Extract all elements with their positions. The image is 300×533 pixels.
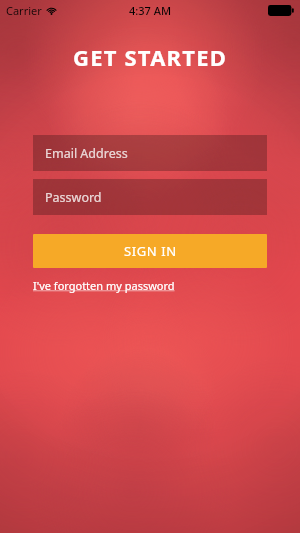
staticText: Email Address [45, 145, 128, 162]
staticText: Carrier [6, 3, 42, 18]
button[interactable]: SIGN IN [33, 234, 267, 268]
staticText: SIGN IN [124, 242, 177, 260]
staticText: GET STARTED [0, 42, 300, 72]
staticText: 4:37 AM [129, 3, 172, 18]
button[interactable]: Password [33, 179, 267, 215]
staticText: Password [45, 189, 102, 206]
button[interactable]: I've forgotten my password [33, 278, 175, 293]
staticText: I've forgotten my password [33, 278, 175, 293]
button[interactable]: Email Address [33, 135, 267, 171]
